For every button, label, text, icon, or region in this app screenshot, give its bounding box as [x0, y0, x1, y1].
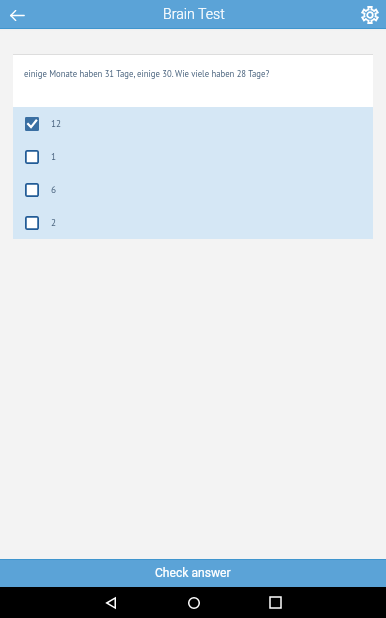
button[interactable]: Check answer — [0, 559, 386, 587]
button[interactable]: Home — [173, 587, 214, 618]
button[interactable]: Settings — [357, 2, 383, 28]
staticText: 1 — [51, 151, 57, 163]
staticText: 6 — [51, 184, 57, 196]
button[interactable]: Back — [4, 2, 30, 28]
staticText: 2 — [51, 217, 57, 229]
button[interactable]: 2 — [13, 206, 373, 239]
staticText: Brain Test — [163, 6, 225, 23]
button[interactable]: Recent apps — [255, 587, 296, 618]
staticText: Check answer — [155, 566, 231, 580]
staticText: einige Monate haben 31 Tage, einige 30. … — [24, 68, 270, 79]
button[interactable]: 6 — [13, 173, 373, 206]
staticText: 12 — [51, 118, 62, 130]
button[interactable]: 1 — [13, 140, 373, 173]
button[interactable]: Back — [90, 587, 131, 618]
button[interactable]: 12 — [13, 107, 373, 140]
